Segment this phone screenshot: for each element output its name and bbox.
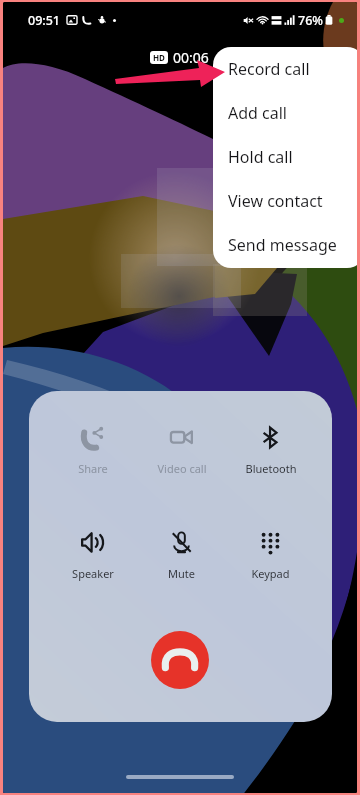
staticText: Bluetooth <box>245 461 297 476</box>
button[interactable]: Keypad <box>226 531 315 581</box>
staticText: HD <box>153 52 165 63</box>
button[interactable]: Send message <box>213 223 357 267</box>
button[interactable]: Hold call <box>213 135 357 179</box>
button[interactable]: Bluetooth <box>226 426 315 476</box>
staticText: Add call <box>228 102 287 124</box>
button[interactable]: Speaker <box>48 531 137 581</box>
button[interactable]: Add call <box>213 91 357 135</box>
button[interactable]: Record call <box>213 47 357 91</box>
button[interactable]: Mute <box>137 531 226 581</box>
staticText: 00:06 <box>173 48 209 67</box>
staticText: Video call <box>157 461 207 476</box>
staticText: Hold call <box>228 146 293 168</box>
staticText: Record call <box>228 58 310 80</box>
staticText: Keypad <box>251 566 290 581</box>
staticText: Share <box>78 461 108 476</box>
staticText: 76% <box>298 12 323 29</box>
staticText: View contact <box>228 190 323 212</box>
staticText: Speaker <box>72 566 114 581</box>
button[interactable]: Video call <box>137 426 226 476</box>
button[interactable]: Share <box>48 426 137 476</box>
staticText: 09:51 <box>28 12 61 29</box>
button[interactable]: End call <box>151 631 209 689</box>
staticText: Send message <box>228 234 337 256</box>
staticText: Mute <box>168 566 195 581</box>
button[interactable]: View contact <box>213 179 357 223</box>
